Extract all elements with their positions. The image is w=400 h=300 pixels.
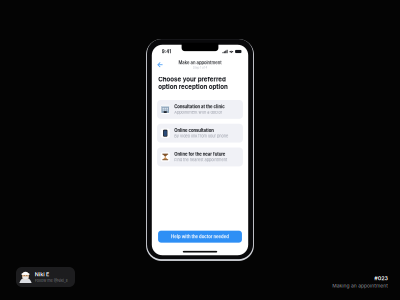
button[interactable]: Consultation at the clinic [173,266,400,300]
staticText: Consultation at the clinic [242,283,400,300]
staticText: 9:41 [192,61,230,83]
button[interactable]: Niki E [16,267,75,287]
staticText: Choose your preferred option reception o… [178,168,400,228]
button[interactable]: Back [166,105,203,144]
